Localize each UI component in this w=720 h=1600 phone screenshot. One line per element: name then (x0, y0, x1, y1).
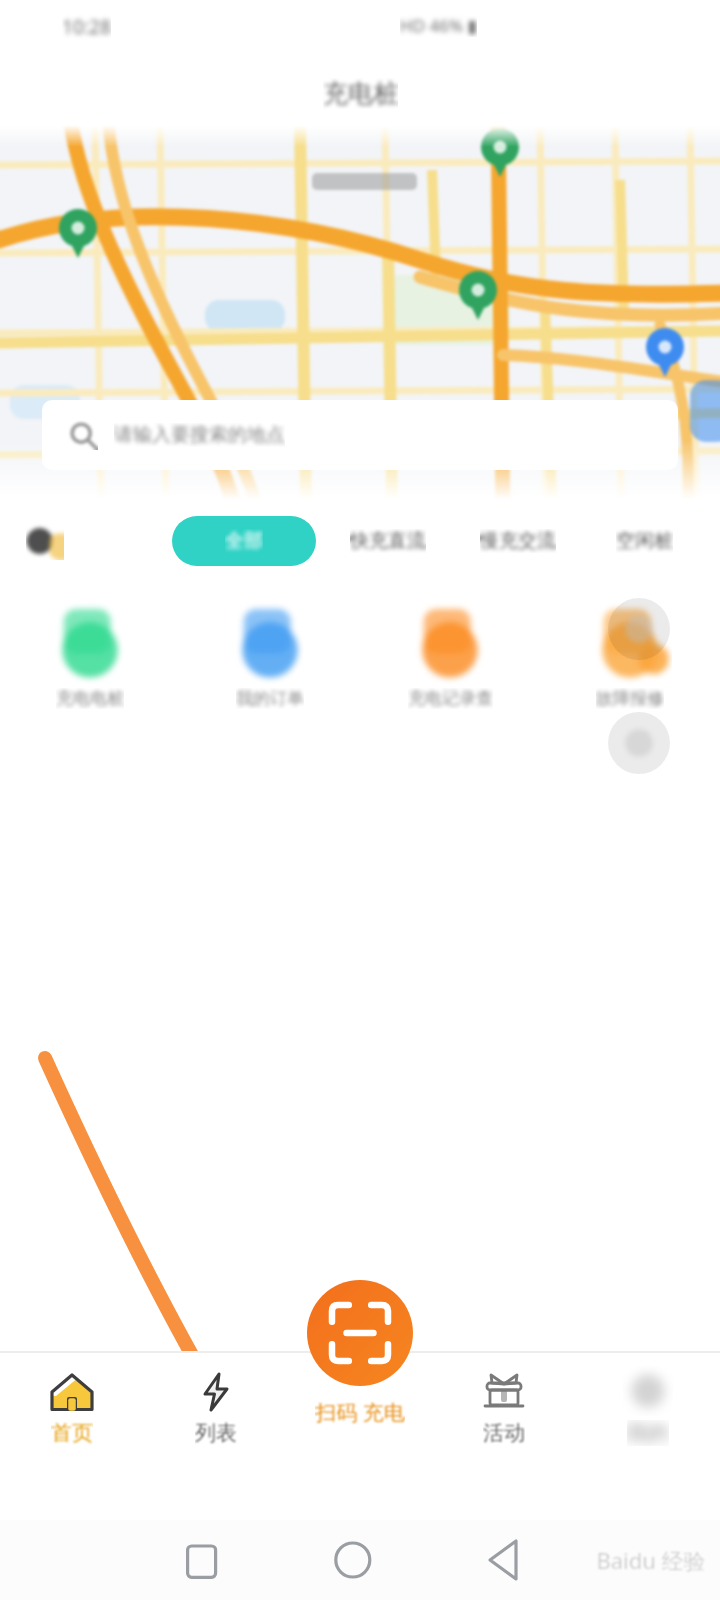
button[interactable]: Layers (608, 712, 670, 774)
staticText: 充电桩 (323, 78, 398, 109)
button[interactable]: 充电电桩 (0, 588, 180, 738)
staticText: 空闲桩 (616, 529, 673, 553)
staticText: 首页 (51, 1420, 93, 1446)
staticText: 快充直流 (350, 529, 426, 553)
staticText: 10:28 (62, 14, 111, 40)
staticText: 慢充交流 (480, 529, 556, 553)
button[interactable]: 全部 (172, 516, 316, 566)
staticText: 活动 (483, 1420, 525, 1446)
staticText: 扫码 充电 (315, 1398, 405, 1427)
staticText: 我的 (627, 1420, 669, 1446)
button[interactable]: Locate (608, 598, 670, 660)
button[interactable]: 扫码充电 (307, 1280, 413, 1386)
button[interactable]: 慢充交流 (462, 516, 574, 566)
staticText: 我的订单 (236, 688, 304, 709)
button[interactable]: 首页 (0, 1352, 144, 1520)
staticText: 故障报修 (596, 688, 664, 709)
staticText: 请输入要搜索的地点 (114, 423, 285, 447)
staticText: HD 46% ▮ (400, 14, 477, 37)
staticText: 充电记录查 (408, 688, 493, 709)
button[interactable]: 快充直流 (332, 516, 444, 566)
staticText: 全部 (225, 529, 263, 553)
button[interactable]: 我的 (576, 1352, 720, 1520)
button[interactable]: 我的订单 (180, 588, 360, 738)
staticText: Baidu 经验 (596, 1545, 706, 1575)
button[interactable]: 请输入要搜索的地点 (42, 400, 678, 470)
staticText: 充电电桩 (56, 688, 124, 709)
button[interactable]: 空闲桩 (588, 516, 700, 566)
button[interactable]: 活动 (432, 1352, 576, 1520)
staticText: 列表 (195, 1420, 237, 1446)
button[interactable]: 列表 (144, 1352, 288, 1520)
button[interactable]: Filter (26, 522, 64, 560)
button[interactable]: 故障报修 (540, 588, 720, 738)
button[interactable]: 充电记录查 (360, 588, 540, 738)
